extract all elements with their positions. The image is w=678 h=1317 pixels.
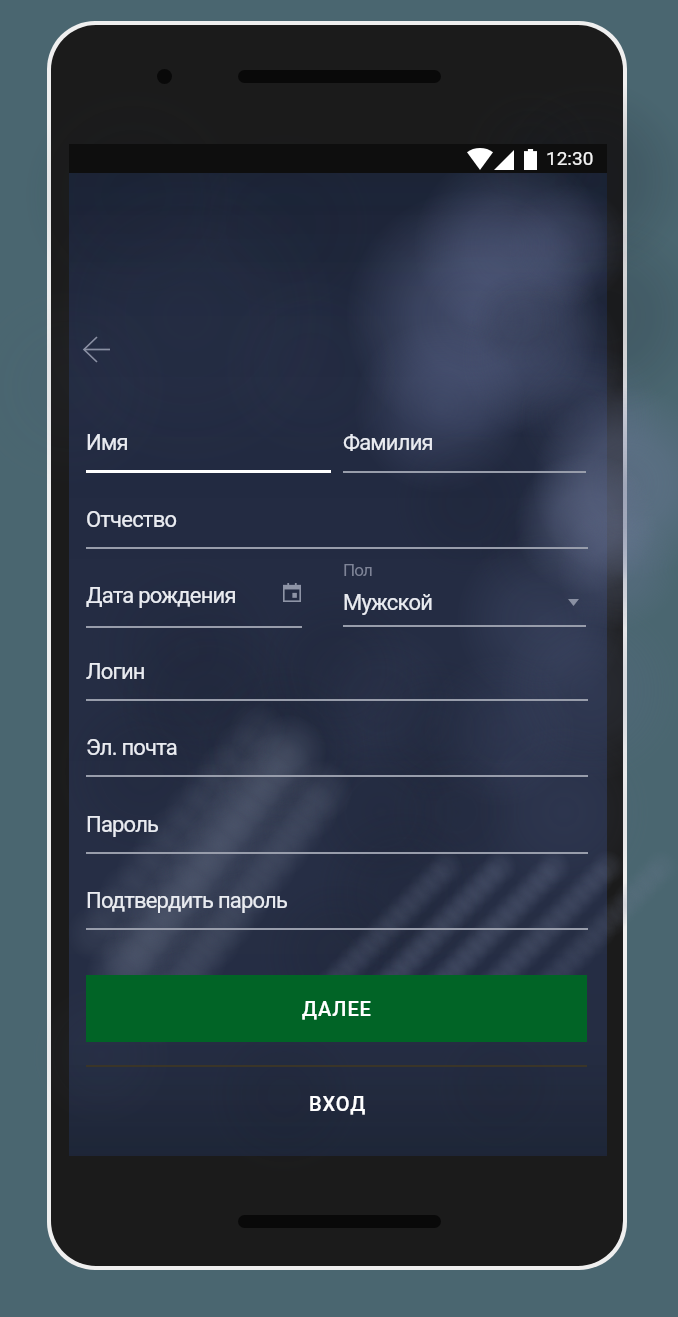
button[interactable]: Back [69, 325, 125, 373]
staticText: Мужской [343, 590, 433, 616]
staticText: ДАЛЕЕ [302, 997, 372, 1020]
staticText: Имя [86, 430, 128, 456]
staticText: Отчество [86, 507, 177, 533]
staticText: Эл. почта [86, 735, 177, 761]
staticText: 12:30 [546, 147, 594, 169]
staticText: Подтвердить пароль [86, 888, 288, 914]
button[interactable]: Pick date [272, 572, 312, 612]
staticText: Пол [343, 560, 373, 580]
button[interactable]: ВХОД [86, 1073, 590, 1133]
staticText: Логин [86, 659, 145, 685]
staticText: Пароль [86, 812, 159, 838]
staticText: Фамилия [343, 430, 433, 456]
button[interactable]: Select gender [554, 583, 592, 621]
staticText: ВХОД [309, 1092, 367, 1115]
staticText: Дата рождения [86, 583, 236, 609]
button[interactable]: ДАЛЕЕ [86, 975, 587, 1042]
